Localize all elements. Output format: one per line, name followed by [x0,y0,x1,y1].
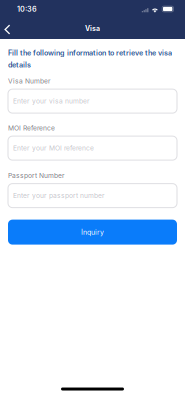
button[interactable]: Back [0,20,21,37]
staticText: MOI Reference [8,124,55,132]
staticText: Passport Number [8,172,65,180]
staticText: Enter your visa number [13,97,90,105]
staticText: 10:36 [17,5,37,13]
staticText: Visa [85,24,100,33]
staticText: Fill the following information to retrie… [8,48,172,69]
staticText: Inquiry [81,228,104,236]
staticText: Enter your passport number [13,192,105,200]
staticText: Visa Number [8,77,51,85]
staticText: Enter your MOI reference [13,144,94,152]
button[interactable]: Inquiry [8,220,177,245]
